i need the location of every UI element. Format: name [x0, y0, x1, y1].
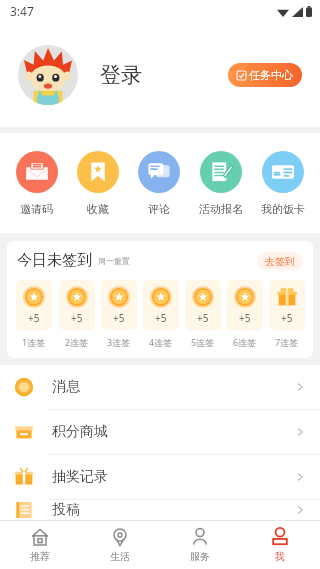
button[interactable]: 活动报名	[190, 133, 252, 233]
button[interactable]: 抽奖记录	[0, 455, 320, 499]
staticText: 推荐	[30, 550, 50, 563]
button[interactable]: 推荐	[0, 521, 80, 569]
button[interactable]: 积分商城	[0, 410, 320, 454]
button[interactable]: 任务中心	[228, 63, 302, 87]
staticText: 消息	[52, 378, 80, 396]
staticText: +5	[155, 311, 167, 325]
staticText: 3:47	[10, 3, 34, 19]
button[interactable]: +5	[140, 280, 182, 348]
button[interactable]: 邀请码	[6, 133, 67, 233]
button[interactable]: 登录	[100, 62, 142, 88]
staticText: 4连签	[149, 336, 173, 348]
staticText: 我的饭卡	[261, 202, 305, 216]
staticText: +5	[239, 311, 251, 325]
button[interactable]: 生活	[80, 521, 160, 569]
staticText: 3连签	[107, 336, 131, 348]
staticText: 周一重置	[98, 256, 130, 266]
staticText: 5连签	[191, 336, 215, 348]
staticText: 服务	[190, 550, 210, 563]
staticText: 我	[275, 550, 285, 563]
staticText: 投稿	[52, 501, 80, 519]
button[interactable]: +5	[12, 280, 55, 348]
staticText: 2连签	[65, 336, 89, 348]
staticText: 积分商城	[52, 423, 108, 441]
staticText: 抽奖记录	[52, 468, 108, 486]
staticText: 6连签	[233, 336, 257, 348]
staticText: 7连签	[275, 336, 299, 348]
staticText: +5	[281, 311, 293, 325]
staticText: 生活	[110, 550, 130, 563]
staticText: +5	[197, 311, 209, 325]
button[interactable]: 我的饭卡	[252, 133, 314, 233]
button[interactable]: 去签到	[257, 252, 303, 270]
staticText: +5	[71, 311, 83, 325]
button[interactable]: +5	[266, 280, 308, 348]
staticText: 1连签	[22, 336, 46, 348]
staticText: +5	[28, 311, 40, 325]
button[interactable]: 投稿	[0, 500, 320, 520]
button[interactable]: +5	[224, 280, 266, 348]
button[interactable]: +5	[182, 280, 224, 348]
button[interactable]: 收藏	[67, 133, 128, 233]
staticText: 收藏	[87, 202, 109, 216]
button[interactable]: +5	[98, 280, 140, 348]
staticText: 任务中心	[249, 68, 293, 82]
button[interactable]: Avatar	[18, 45, 78, 105]
staticText: 去签到	[265, 255, 295, 268]
button[interactable]: 我	[240, 521, 320, 569]
staticText: 评论	[148, 202, 170, 216]
staticText: 今日未签到	[17, 251, 92, 270]
button[interactable]: 消息	[0, 365, 320, 409]
staticText: 活动报名	[199, 202, 243, 216]
staticText: 邀请码	[20, 202, 53, 216]
button[interactable]: +5	[55, 280, 98, 348]
button[interactable]: 评论	[128, 133, 190, 233]
button[interactable]: 服务	[160, 521, 240, 569]
staticText: +5	[113, 311, 125, 325]
